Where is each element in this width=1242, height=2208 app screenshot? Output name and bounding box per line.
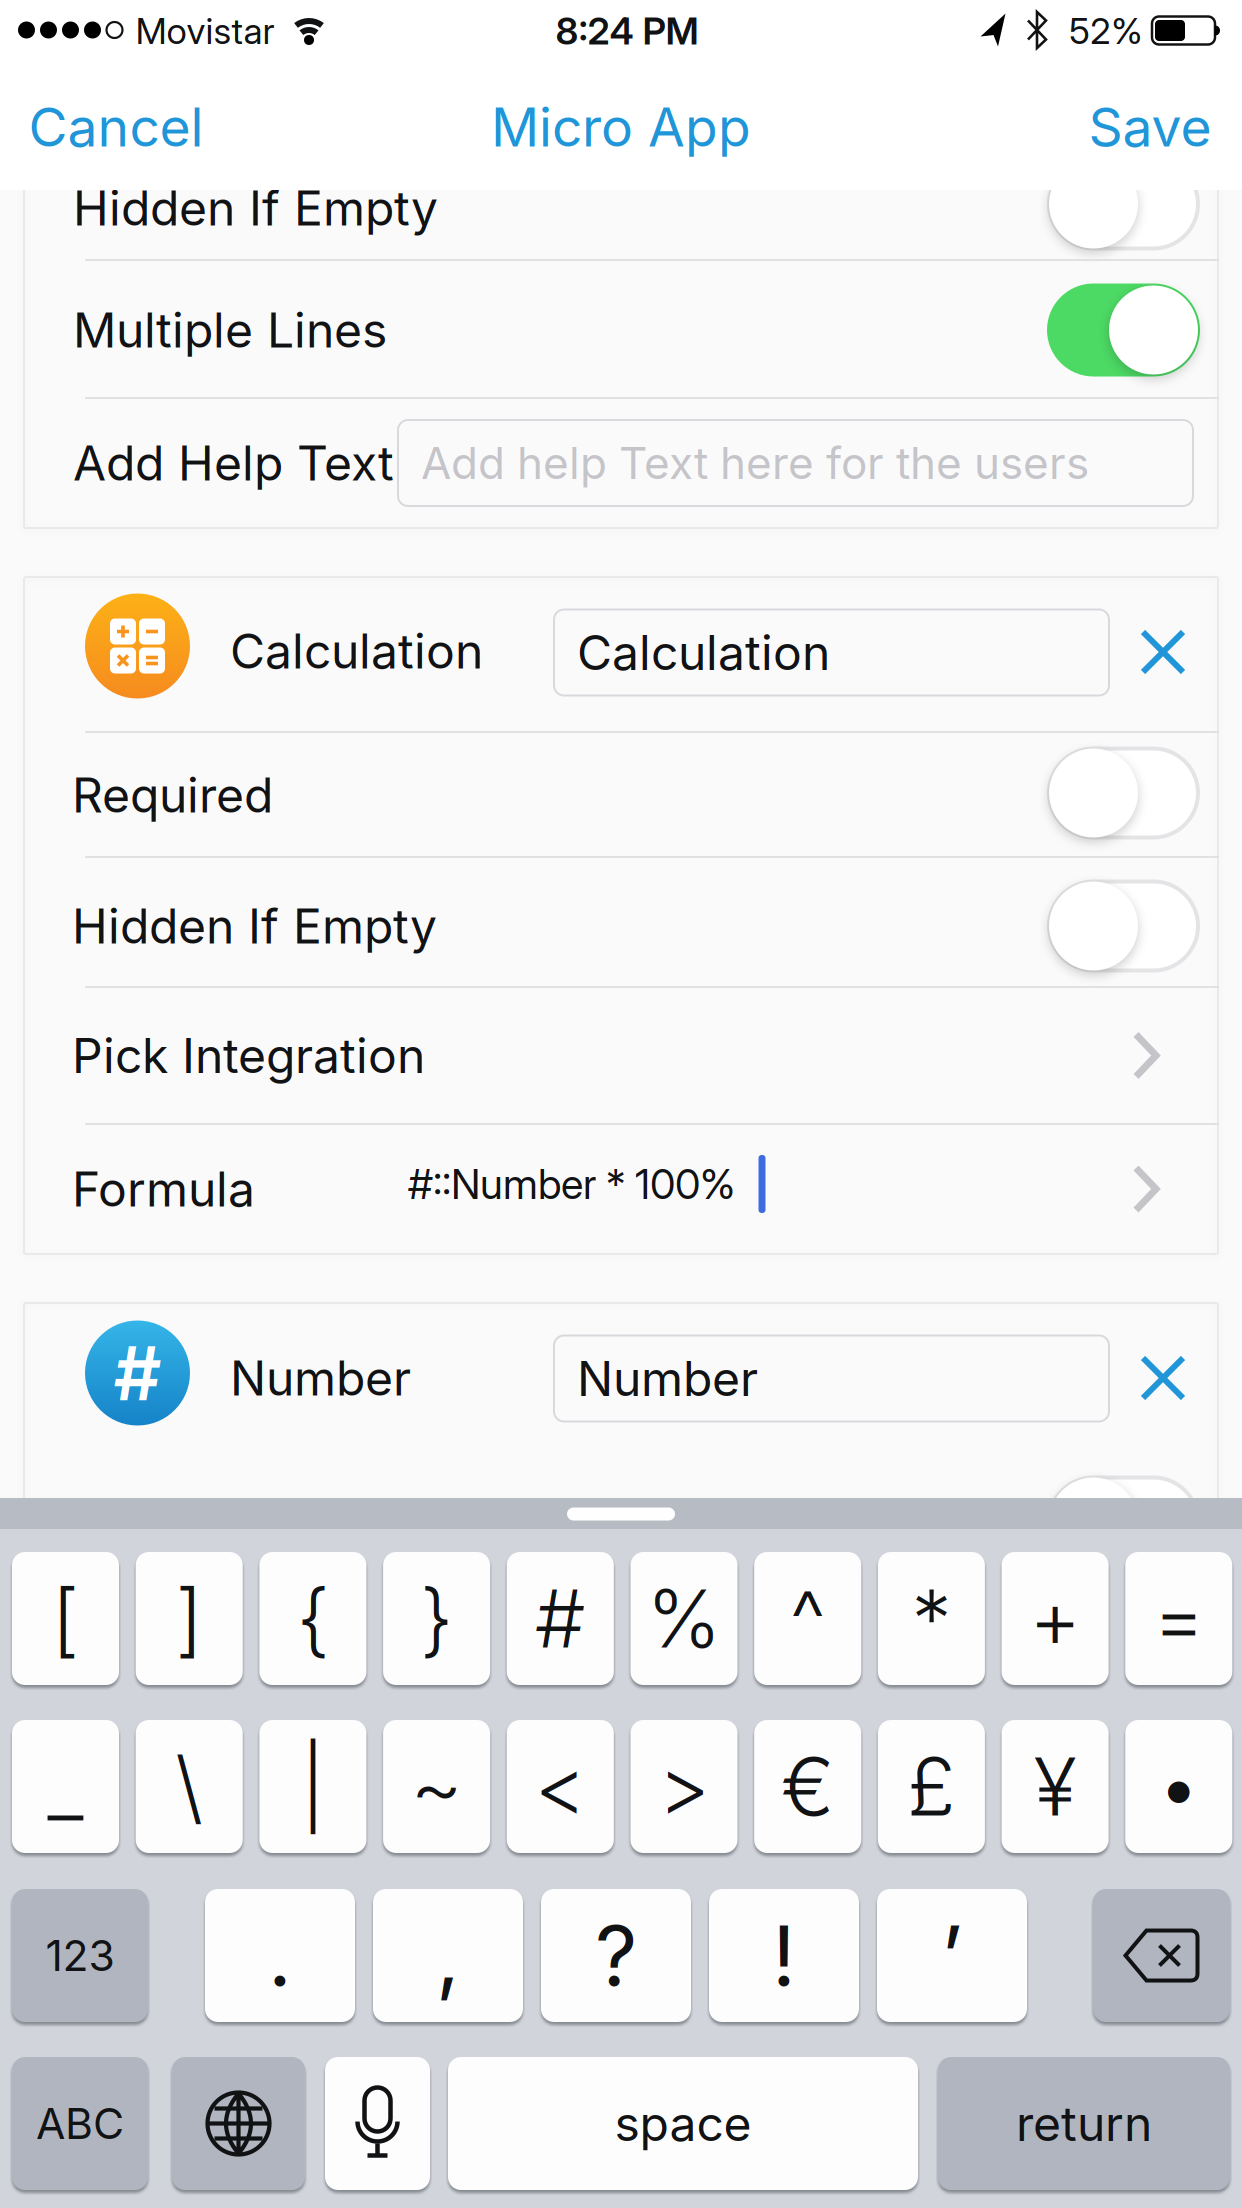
staticText: Multiple Lines xyxy=(73,302,387,358)
button[interactable]: ] xyxy=(136,1552,243,1685)
staticText: Hidden If Empty xyxy=(72,898,437,954)
staticText: ^ xyxy=(790,1571,826,1666)
button[interactable]: _ xyxy=(12,1720,119,1853)
staticText: { xyxy=(296,1571,329,1666)
staticText: [ xyxy=(51,1571,79,1666)
staticText: = xyxy=(1153,1571,1205,1666)
button[interactable]: € xyxy=(754,1720,861,1853)
button[interactable]: Save xyxy=(1088,95,1211,158)
staticText: + xyxy=(1029,1571,1081,1666)
button[interactable]: 123 xyxy=(12,1889,148,2022)
staticText: £ xyxy=(907,1739,956,1834)
staticText: • xyxy=(1156,1739,1201,1834)
staticText: Movistar xyxy=(135,10,274,52)
button[interactable]: • xyxy=(1125,1720,1232,1853)
button[interactable]: ? xyxy=(541,1889,691,2022)
button[interactable]: Toggle off xyxy=(1047,157,1200,250)
button[interactable]: * xyxy=(878,1552,985,1685)
button[interactable]: return xyxy=(938,2057,1230,2190)
staticText: ~ xyxy=(411,1739,463,1834)
staticText: > xyxy=(658,1739,710,1834)
button[interactable]: Toggle off xyxy=(1047,1475,1200,1568)
button[interactable]: Text field xyxy=(553,1334,1110,1422)
button[interactable]: > xyxy=(630,1720,737,1853)
staticText: Cancel xyxy=(28,95,203,158)
button[interactable]: % xyxy=(630,1552,737,1685)
staticText: Formula xyxy=(72,1161,255,1217)
staticText: # xyxy=(113,1329,161,1417)
button[interactable]: Cancel xyxy=(28,95,203,158)
button[interactable]: < xyxy=(507,1720,614,1853)
button[interactable]: Toggle off xyxy=(1047,879,1200,972)
button[interactable]: ~ xyxy=(383,1720,490,1853)
button[interactable]: Toggle on xyxy=(1047,283,1200,376)
staticText: return xyxy=(1016,2095,1152,2152)
staticText: \ xyxy=(175,1739,203,1834)
staticText: Required xyxy=(72,767,273,823)
button[interactable]: Dictate xyxy=(325,2057,430,2190)
staticText: 8:24 PM xyxy=(555,9,698,53)
staticText: Add Help Text xyxy=(73,435,394,491)
staticText: ! xyxy=(772,1907,796,2004)
button[interactable]: Delete xyxy=(1093,1889,1230,2022)
button[interactable]: , xyxy=(373,1889,523,2022)
button[interactable]: { xyxy=(259,1552,366,1685)
button[interactable]: Text field xyxy=(553,608,1110,696)
button[interactable]: ’ xyxy=(877,1889,1027,2022)
staticText: } xyxy=(420,1571,453,1666)
staticText: Number xyxy=(230,1350,411,1406)
button[interactable]: Remove field xyxy=(1140,1355,1186,1401)
staticText: Calculation xyxy=(230,623,483,679)
button[interactable]: # xyxy=(507,1552,614,1685)
button[interactable]: \ xyxy=(136,1720,243,1853)
staticText: | xyxy=(300,1739,325,1834)
staticText: Pick Integration xyxy=(72,1027,425,1084)
button[interactable]: Formula xyxy=(23,1124,1219,1254)
button[interactable]: Pick Integration xyxy=(23,988,1219,1123)
staticText: _ xyxy=(47,1739,83,1834)
button[interactable]: £ xyxy=(878,1720,985,1853)
staticText: . xyxy=(268,1907,292,2004)
staticText: # xyxy=(535,1571,586,1666)
staticText: Save xyxy=(1088,95,1211,158)
button[interactable]: ! xyxy=(709,1889,859,2022)
staticText: Hidden If Empty xyxy=(73,180,438,236)
staticText: ¥ xyxy=(1034,1739,1077,1834)
button[interactable]: = xyxy=(1125,1552,1232,1685)
button[interactable]: } xyxy=(383,1552,490,1685)
button[interactable]: Next keyboard xyxy=(172,2057,305,2190)
staticText: ? xyxy=(595,1907,637,2004)
staticText: ] xyxy=(175,1571,203,1666)
button[interactable]: ¥ xyxy=(1002,1720,1109,1853)
button[interactable]: + xyxy=(1002,1552,1109,1685)
staticText: * xyxy=(911,1571,951,1666)
staticText: Micro App xyxy=(491,95,751,158)
button[interactable]: ABC xyxy=(12,2057,148,2190)
staticText: ’ xyxy=(941,1907,963,2004)
staticText: < xyxy=(534,1739,586,1834)
staticText: Calculation xyxy=(577,624,830,681)
staticText: Number xyxy=(577,1350,758,1407)
button[interactable]: Remove field xyxy=(1140,629,1186,675)
staticText: € xyxy=(781,1739,835,1834)
button[interactable]: Toggle off xyxy=(1047,746,1200,839)
button[interactable]: space xyxy=(448,2057,918,2190)
button[interactable]: [ xyxy=(12,1552,119,1685)
staticText: % xyxy=(646,1571,721,1666)
staticText: ABC xyxy=(36,2098,124,2149)
button[interactable]: ^ xyxy=(754,1552,861,1685)
staticText: Add help Text here for the users xyxy=(421,437,1089,489)
staticText: , xyxy=(436,1907,460,2004)
button[interactable]: Text field xyxy=(397,419,1194,507)
staticText: space xyxy=(614,2095,751,2152)
staticText: 52% xyxy=(1069,10,1143,52)
staticText: 123 xyxy=(45,1930,114,1981)
button[interactable]: | xyxy=(259,1720,366,1853)
button[interactable]: . xyxy=(205,1889,355,2022)
staticText: #::Number * 100% xyxy=(408,1160,735,1208)
